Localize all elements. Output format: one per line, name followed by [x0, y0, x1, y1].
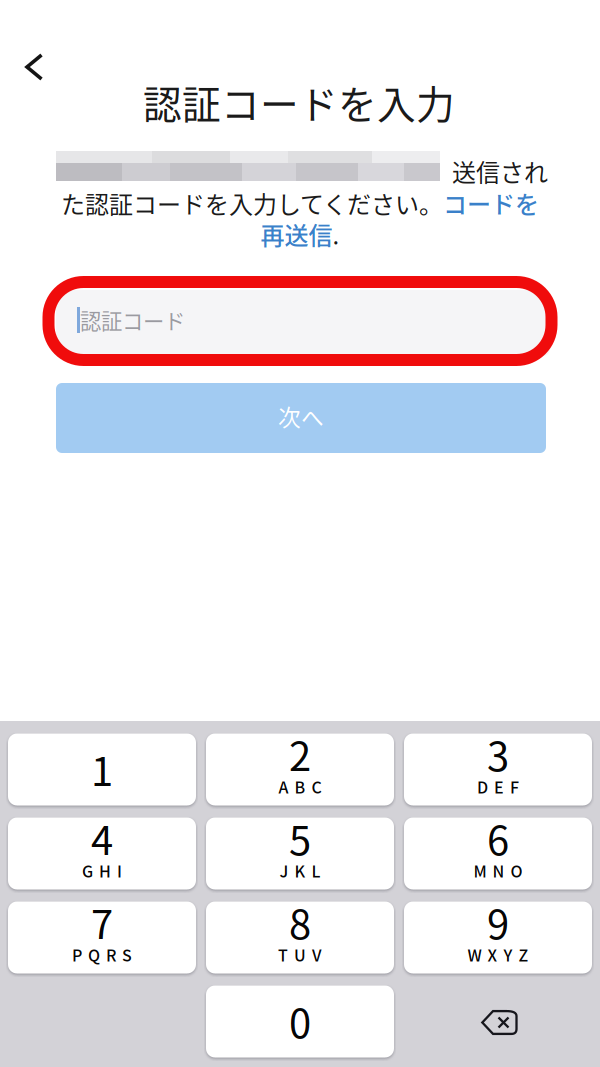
button[interactable]: 3: [404, 733, 592, 805]
button[interactable]: 7: [8, 901, 196, 973]
button[interactable]: 8: [206, 901, 394, 973]
staticText: コードを: [443, 186, 539, 220]
staticText: 認証コード: [80, 305, 185, 335]
staticText: 3: [487, 724, 509, 782]
button[interactable]: 6: [404, 817, 592, 889]
button[interactable]: 2: [206, 733, 394, 805]
staticText: J K L: [279, 859, 320, 882]
button[interactable]: 再送信: [260, 217, 332, 251]
button[interactable]: Back: [1, 40, 67, 94]
button[interactable]: コードを: [443, 186, 539, 220]
button[interactable]: 5: [206, 817, 394, 889]
staticText: 6: [487, 808, 509, 866]
staticText: A B C: [278, 775, 321, 798]
button[interactable]: 1: [8, 733, 196, 805]
staticText: 7: [91, 892, 113, 950]
staticText: 認証コードを入力: [143, 74, 455, 130]
button[interactable]: 認証コード: [56, 290, 550, 356]
staticText: た認証コードを入力してください。: [61, 186, 443, 220]
staticText: D E F: [477, 775, 519, 798]
staticText: 次へ: [278, 400, 324, 432]
staticText: W X Y Z: [467, 943, 528, 966]
staticText: 5: [289, 808, 311, 866]
staticText: P Q R S: [72, 943, 132, 966]
button[interactable]: 次へ: [56, 383, 546, 453]
staticText: T U V: [278, 943, 322, 966]
staticText: 8: [289, 892, 311, 950]
staticText: G H I: [82, 859, 122, 882]
staticText: 送信され: [452, 154, 548, 188]
button[interactable]: Delete: [404, 985, 592, 1057]
staticText: 1: [91, 739, 113, 797]
button[interactable]: 9: [404, 901, 592, 973]
button[interactable]: 0: [206, 985, 394, 1057]
staticText: 0: [289, 991, 311, 1049]
staticText: 再送信: [260, 217, 332, 251]
staticText: 9: [487, 892, 509, 950]
staticText: 2: [289, 724, 311, 782]
button[interactable]: 4: [8, 817, 196, 889]
staticText: M N O: [473, 859, 522, 882]
staticText: 4: [91, 808, 113, 866]
staticText: .: [332, 217, 339, 251]
